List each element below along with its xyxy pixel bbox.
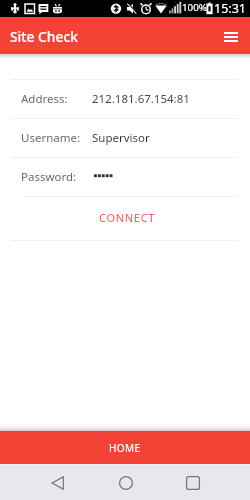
staticText: Address: <box>21 91 68 107</box>
button[interactable]: Recent apps <box>159 465 226 500</box>
button[interactable]: Username: <box>0 119 250 157</box>
button[interactable]: Back <box>24 465 92 500</box>
staticText: Site Check <box>10 27 78 46</box>
button[interactable]: CONNECT <box>0 197 250 240</box>
button[interactable]: HOME <box>0 431 250 464</box>
staticText: 212.181.67.154:81 <box>92 91 190 107</box>
staticText: Supervisor <box>92 130 150 146</box>
staticText: CONNECT <box>99 210 156 225</box>
button[interactable]: Home <box>92 465 159 500</box>
staticText: 100% <box>182 1 207 14</box>
staticText: HOME <box>109 441 141 455</box>
staticText: Password: <box>21 169 77 185</box>
staticText: 15:31 <box>214 0 246 17</box>
staticText: Username: <box>21 130 81 146</box>
button[interactable]: Address: <box>0 80 250 118</box>
button[interactable]: Menu <box>219 24 243 48</box>
button[interactable]: Password: <box>0 158 250 196</box>
